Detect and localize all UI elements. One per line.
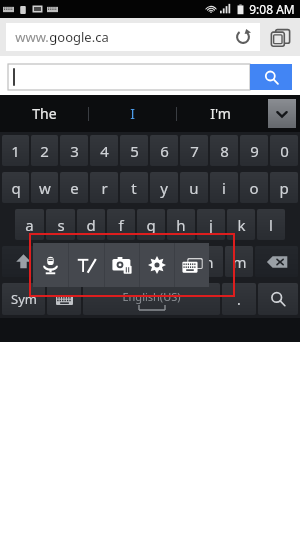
button[interactable]: Shift [2, 246, 44, 277]
button[interactable]: l [257, 209, 285, 240]
staticText: h [176, 215, 186, 235]
staticText: x [85, 252, 93, 272]
staticText: f [118, 215, 124, 235]
button[interactable]: Input method [47, 283, 81, 315]
staticText: 6 [160, 141, 169, 161]
button[interactable]: f [107, 209, 135, 240]
staticText: w [39, 178, 51, 198]
button[interactable]: 4 [90, 135, 118, 166]
button[interactable]: 1 [2, 135, 29, 166]
button[interactable]: 9 [240, 135, 268, 166]
staticText: 4 [100, 141, 109, 161]
button[interactable]: n [195, 246, 223, 277]
staticText: English(US) [122, 289, 181, 304]
staticText: g [146, 215, 156, 235]
button[interactable]: 3 [60, 135, 88, 166]
staticText: 1 [11, 141, 20, 161]
button[interactable]: Sym [2, 283, 45, 315]
staticText: k [237, 215, 246, 235]
button[interactable]: p [270, 172, 298, 203]
staticText: o [249, 178, 259, 198]
staticText: r [101, 178, 108, 198]
staticText: 3 [70, 141, 79, 161]
button[interactable]: I'm [177, 95, 264, 132]
staticText: The [32, 104, 57, 123]
button[interactable]: c [105, 246, 133, 277]
button[interactable]: Tabs [266, 23, 294, 51]
button[interactable]: 7 [180, 135, 208, 166]
button[interactable]: z [46, 246, 73, 277]
staticText: i [222, 178, 226, 198]
button[interactable]: a [15, 209, 44, 240]
button[interactable]: t [120, 172, 148, 203]
staticText: Sym [11, 290, 37, 308]
button[interactable]: y [150, 172, 178, 203]
button[interactable]: b [165, 246, 193, 277]
staticText: a [25, 215, 34, 235]
staticText: e [70, 178, 79, 198]
button[interactable]: Settings [140, 243, 174, 287]
button[interactable]: English(US) [83, 283, 220, 315]
button[interactable]: Voice input [33, 243, 68, 287]
staticText: m [232, 252, 247, 272]
staticText: l [269, 215, 273, 235]
staticText: u [189, 178, 199, 198]
button[interactable]: u [180, 172, 208, 203]
button[interactable]: d [77, 209, 105, 240]
button[interactable]: 2 [31, 135, 58, 166]
staticText: 2 [40, 141, 49, 161]
staticText: b [174, 252, 184, 272]
button[interactable] [8, 64, 250, 90]
staticText: z [56, 252, 64, 272]
staticText: s [57, 215, 65, 235]
button[interactable]: w [31, 172, 58, 203]
staticText: www. [15, 28, 49, 46]
button[interactable]: k [227, 209, 255, 240]
button[interactable]: Search [258, 283, 298, 315]
button[interactable]: r [90, 172, 118, 203]
staticText: y [160, 178, 168, 198]
button[interactable]: Backspace [255, 246, 298, 277]
staticText: 7 [190, 141, 199, 161]
staticText: 0 [280, 141, 289, 161]
staticText: v [145, 252, 153, 272]
button[interactable]: j [197, 209, 225, 240]
button[interactable]: 5 [120, 135, 148, 166]
button[interactable]: 0 [270, 135, 298, 166]
button[interactable]: m [225, 246, 253, 277]
button[interactable]: i [210, 172, 238, 203]
button[interactable]: g [137, 209, 165, 240]
button[interactable]: Search [250, 64, 292, 90]
button[interactable]: Period [222, 283, 256, 315]
staticText: I'm [210, 104, 231, 123]
button[interactable]: e [60, 172, 88, 203]
button[interactable]: h [167, 209, 195, 240]
staticText: t [131, 178, 137, 198]
button[interactable]: Reload [231, 25, 255, 49]
button[interactable]: Switch keyboard [175, 243, 209, 287]
button[interactable]: Camera [105, 243, 139, 287]
button[interactable]: The [0, 95, 88, 132]
button[interactable]: Handwriting [69, 243, 104, 287]
staticText: q [11, 178, 21, 198]
button[interactable]: x [75, 246, 103, 277]
staticText: j [209, 215, 213, 235]
staticText: 5 [130, 141, 139, 161]
staticText: p [279, 178, 289, 198]
button[interactable]: q [2, 172, 29, 203]
button[interactable]: o [240, 172, 268, 203]
button[interactable]: www. [6, 23, 260, 51]
staticText: c [115, 252, 123, 272]
button[interactable]: 6 [150, 135, 178, 166]
staticText: . [237, 290, 241, 309]
button[interactable]: v [135, 246, 163, 277]
staticText: I [130, 104, 135, 123]
button[interactable]: s [46, 209, 75, 240]
staticText: 9 [250, 141, 259, 161]
button[interactable]: 8 [210, 135, 238, 166]
staticText: 9:08 AM [249, 1, 295, 17]
staticText: google.ca [49, 28, 109, 46]
button[interactable]: I [89, 95, 176, 132]
staticText: 8 [220, 141, 229, 161]
button[interactable]: Expand suggestions [268, 99, 296, 128]
